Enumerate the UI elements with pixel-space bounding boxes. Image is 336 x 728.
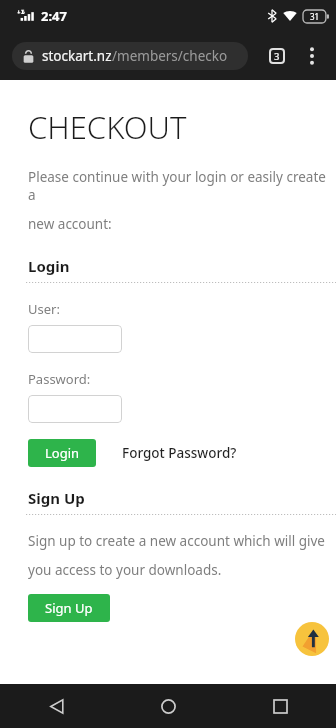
button[interactable]: Sign Up — [28, 594, 110, 622]
staticText: stockart.nz — [42, 47, 112, 65]
staticText: User: — [28, 300, 60, 318]
staticText: 2:47 — [41, 7, 67, 25]
button[interactable]: Home — [148, 686, 188, 726]
button[interactable]: Text input — [28, 395, 122, 423]
button[interactable]: Forgot Password? — [122, 444, 237, 462]
staticText: new account: — [28, 215, 112, 233]
staticText: Please continue with your login or easil… — [28, 168, 330, 204]
staticText: CHECKOUT — [28, 106, 187, 148]
staticText: Login — [45, 444, 80, 462]
staticText: you access to your downloads. — [28, 561, 222, 579]
button[interactable]: Scroll to top — [295, 622, 329, 656]
staticText: Login — [28, 256, 70, 276]
button[interactable]: Login — [28, 439, 96, 467]
button[interactable]: stockart.nz — [12, 42, 248, 70]
staticText: /members/checko — [112, 47, 228, 65]
button[interactable]: Recent apps — [260, 686, 300, 726]
staticText: Sign up to create a new account which wi… — [28, 532, 325, 550]
button[interactable]: Text input — [28, 325, 122, 353]
staticText: 3 — [274, 50, 280, 63]
staticText: 31 — [310, 11, 320, 22]
staticText: Sign Up — [28, 488, 85, 508]
button[interactable]: Back — [36, 686, 76, 726]
button[interactable]: More options — [296, 40, 328, 72]
button[interactable]: Tabs, 3 open — [262, 41, 292, 71]
staticText: Password: — [28, 370, 91, 388]
staticText: Sign Up — [45, 599, 93, 617]
